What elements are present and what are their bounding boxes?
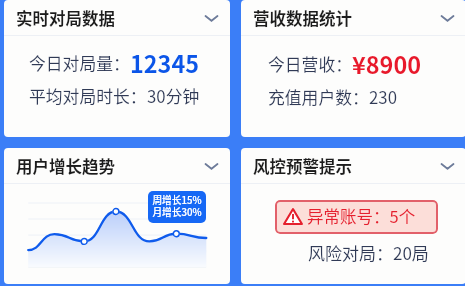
staticText: 平均对局时长： xyxy=(29,84,147,108)
button[interactable]: 用户增长趋势 xyxy=(4,148,230,183)
staticText: 风险对局：20局 xyxy=(308,240,429,265)
staticText: 营收数据统计 xyxy=(253,6,352,30)
other: Collapse xyxy=(435,8,455,28)
staticText: 30分钟 xyxy=(147,84,200,108)
staticText: 周增长15% 月增长30% xyxy=(152,193,202,219)
staticText: 今日对局量： xyxy=(29,51,130,75)
button[interactable]: 异常账号：5个 xyxy=(275,200,438,234)
staticText: 充值用户数： xyxy=(268,85,369,109)
staticText: 230 xyxy=(369,85,397,109)
button[interactable]: 实时对局数据 xyxy=(4,0,230,35)
button[interactable]: 营收数据统计 xyxy=(241,0,465,35)
staticText: 用户增长趋势 xyxy=(16,154,115,178)
staticText: 今日营收： xyxy=(268,52,352,76)
other: Collapse xyxy=(435,156,455,176)
button[interactable]: 周增长15% 月增长30% xyxy=(148,191,206,223)
other: Collapse xyxy=(199,8,219,28)
staticText: 异常账号：5个 xyxy=(307,204,416,228)
button[interactable]: 风控预警提示 xyxy=(241,148,465,183)
staticText: 实时对局数据 xyxy=(16,6,115,30)
staticText: ¥8900 xyxy=(352,47,422,81)
staticText: 风控预警提示 xyxy=(253,154,352,178)
other: Collapse xyxy=(199,156,219,176)
staticText: 12345 xyxy=(130,46,200,80)
